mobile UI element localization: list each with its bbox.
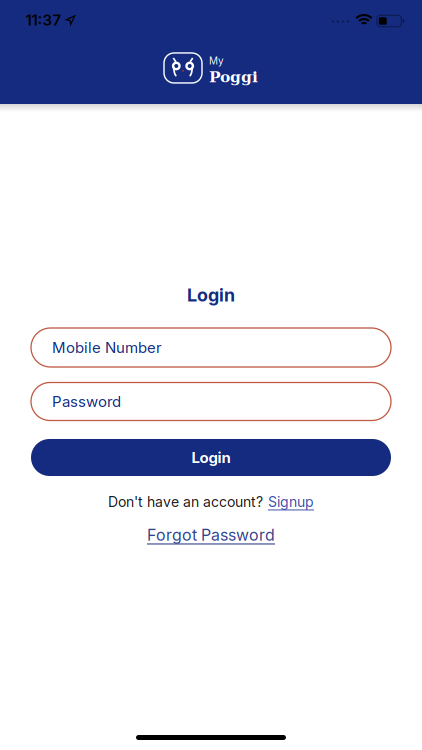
button[interactable]: Login <box>31 439 391 476</box>
staticText: Poggi <box>209 68 258 86</box>
staticText: Forgot Password <box>147 526 275 544</box>
staticText: 11:37 <box>25 11 61 29</box>
button[interactable]: Mobile Number <box>31 328 391 367</box>
button[interactable]: Password <box>31 382 391 420</box>
button[interactable]: Forgot Password <box>147 526 275 544</box>
button[interactable]: Signup <box>268 494 314 510</box>
staticText: Mobile Number <box>52 339 162 356</box>
staticText: Don't have an account? <box>108 494 263 510</box>
staticText: Login <box>191 449 230 466</box>
staticText: Password <box>52 393 121 410</box>
staticText: Signup <box>268 494 314 510</box>
staticText: My <box>209 55 224 67</box>
staticText: Login <box>187 284 235 306</box>
